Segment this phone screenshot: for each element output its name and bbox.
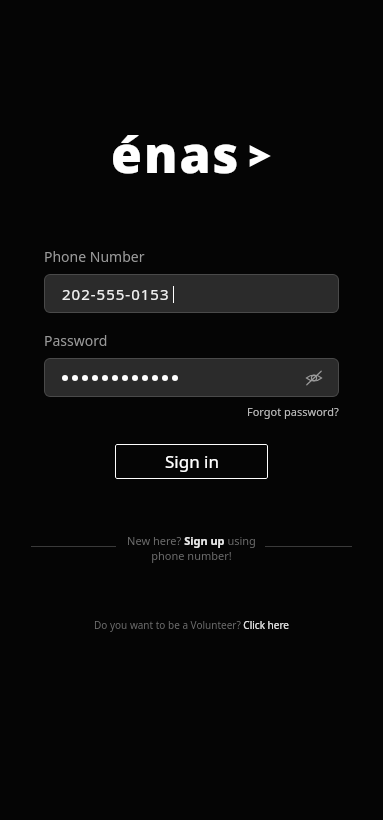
staticText: Password <box>44 331 108 350</box>
staticText: New here? Sign up using phone number! <box>120 533 263 563</box>
button[interactable]: Hide password <box>44 358 339 397</box>
staticText: énas <box>111 120 241 188</box>
staticText: Sign in <box>165 450 219 473</box>
staticText: Phone Number <box>44 247 145 266</box>
staticText: 202-555-0153 <box>62 284 170 304</box>
button[interactable]: Forgot password? <box>247 404 339 419</box>
button[interactable]: New here? Sign up using phone number! <box>120 533 263 563</box>
button[interactable]: 202-555-0153 <box>44 274 339 313</box>
staticText: Do you want to be a Volunteer? Click her… <box>94 618 289 632</box>
button[interactable]: Sign in <box>115 444 268 479</box>
button[interactable]: Do you want to be a Volunteer? Click her… <box>94 618 289 632</box>
button[interactable]: Hide password <box>301 365 327 391</box>
staticText: Forgot password? <box>247 404 339 419</box>
